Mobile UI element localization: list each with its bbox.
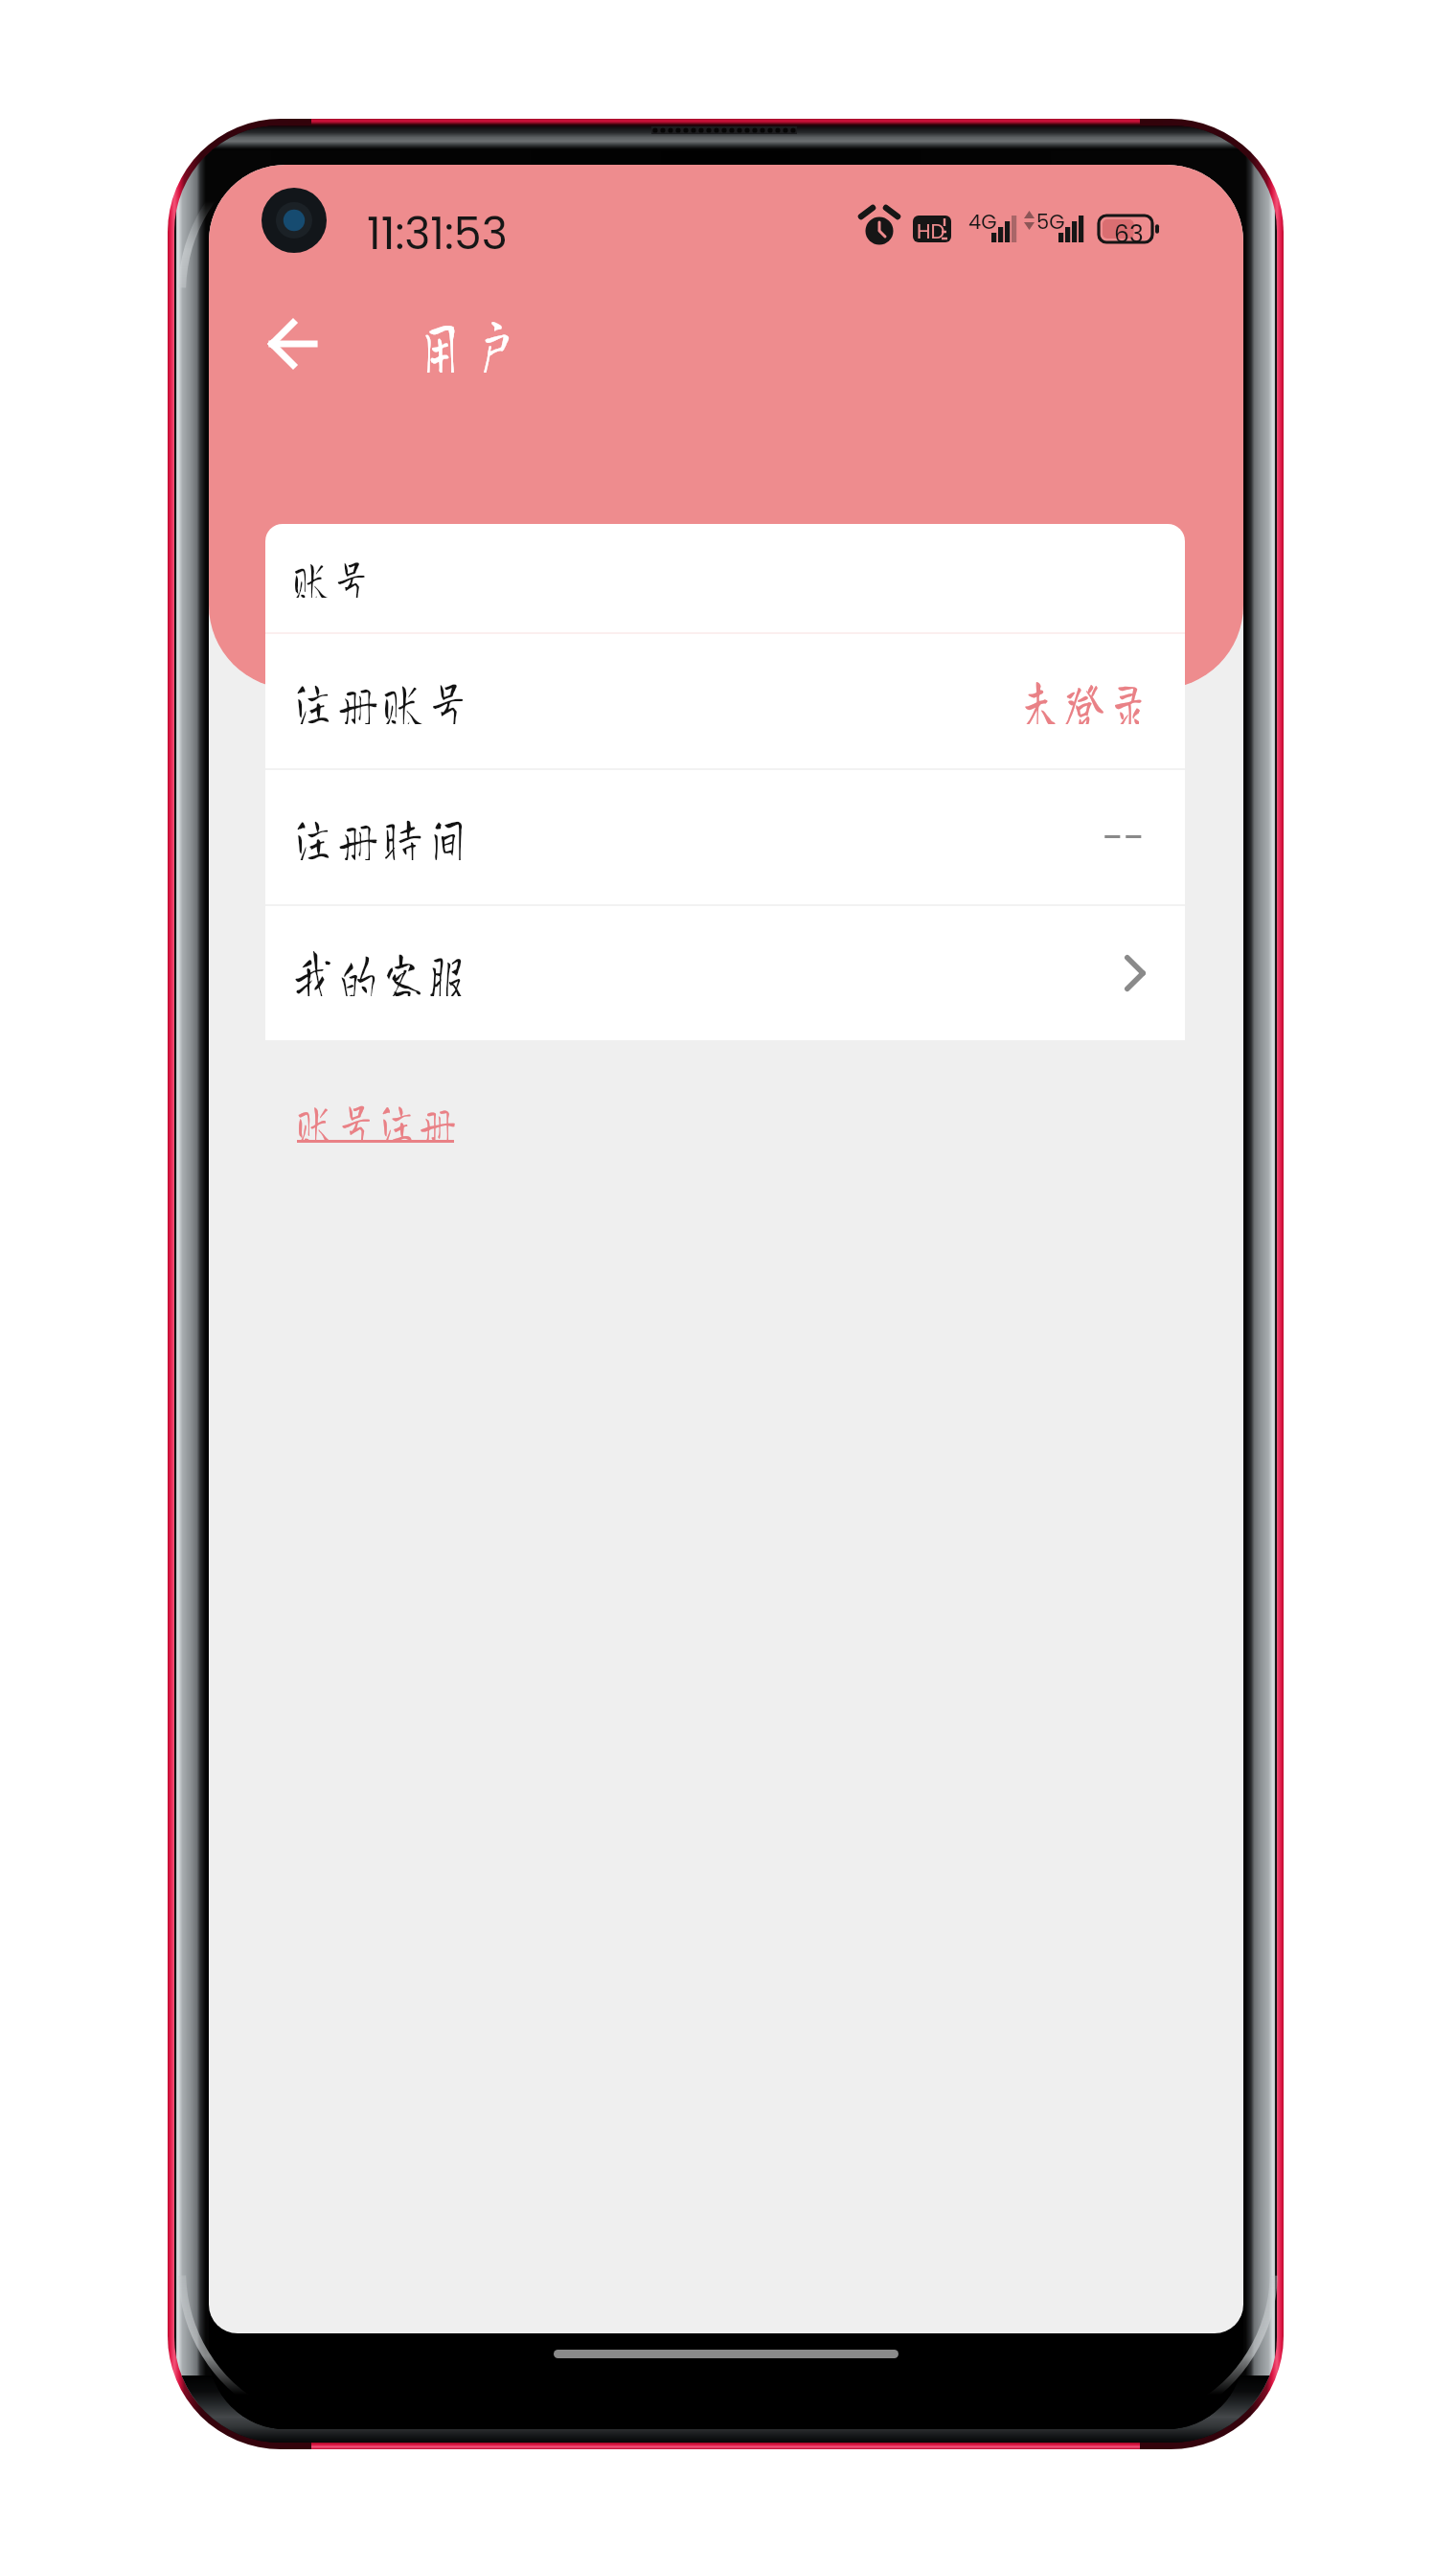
staticText: 账号 [293,551,374,598]
staticText: 注册账号 [293,671,473,724]
staticText: 11:31:53 [367,203,508,264]
staticText: HD [917,217,945,245]
staticText: 账号注册 [297,1094,461,1142]
button[interactable]: 注册时间 [265,770,1185,904]
staticText: 4G [968,208,997,236]
staticText: 注册时间 [293,807,473,860]
staticText: 5G [1036,208,1065,236]
staticText: 用户 [416,308,524,373]
button[interactable]: 账号注册 [291,1092,460,1154]
button[interactable]: 我的客服 [265,906,1185,1040]
staticText: 我的客服 [293,943,473,996]
staticText: 未登录 [1018,671,1154,724]
staticText: -- [1103,810,1146,864]
button[interactable]: Back [255,307,330,381]
staticText: 63 [1114,217,1144,251]
button[interactable]: 注册账号 [265,634,1185,768]
